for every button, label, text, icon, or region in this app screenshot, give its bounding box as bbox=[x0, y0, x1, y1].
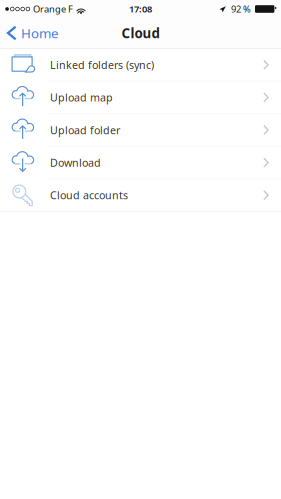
button[interactable]: Cloud accounts bbox=[0, 179, 281, 212]
staticText: Orange F bbox=[33, 3, 73, 15]
staticText: 17:08 bbox=[129, 3, 152, 15]
staticText: Upload map bbox=[50, 90, 113, 104]
staticText: Home bbox=[21, 24, 59, 42]
staticText: Download bbox=[50, 155, 101, 170]
button[interactable]: Download bbox=[0, 147, 281, 179]
button[interactable]: Upload map bbox=[0, 82, 281, 114]
staticText: Upload folder bbox=[50, 123, 120, 137]
button[interactable]: Upload folder bbox=[0, 114, 281, 147]
button[interactable]: Linked folders (sync) bbox=[0, 49, 281, 82]
staticText: Cloud bbox=[121, 24, 159, 42]
button[interactable]: Home bbox=[0, 18, 67, 48]
staticText: Linked folders (sync) bbox=[50, 58, 154, 72]
staticText: Cloud accounts bbox=[50, 188, 128, 202]
staticText: 92 % bbox=[231, 3, 251, 15]
